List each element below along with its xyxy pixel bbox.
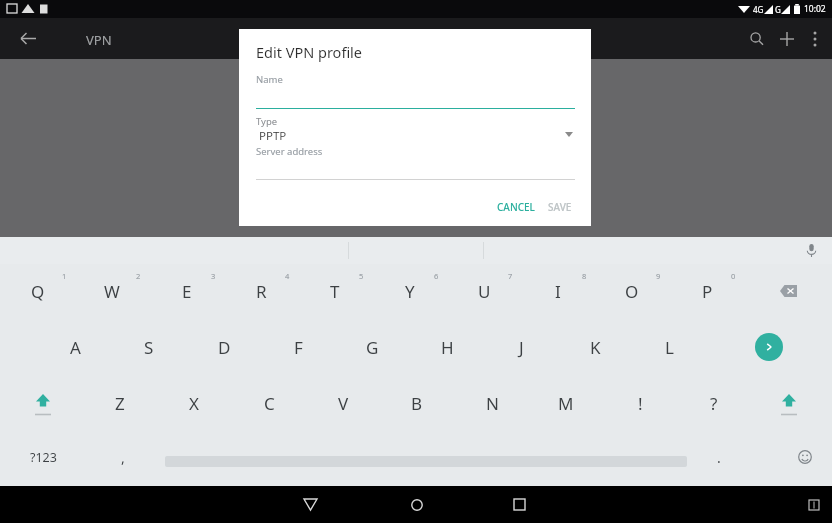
button[interactable]: W bbox=[81, 266, 143, 316]
staticText: W bbox=[104, 280, 120, 303]
button[interactable]: ! bbox=[609, 378, 671, 428]
button[interactable]: J bbox=[490, 322, 552, 372]
button[interactable]: , bbox=[98, 435, 148, 479]
button[interactable]: L bbox=[638, 322, 700, 372]
staticText: CANCEL bbox=[497, 200, 535, 214]
button[interactable]: Add VPN profile bbox=[772, 18, 802, 59]
staticText: X bbox=[189, 392, 199, 415]
staticText: G bbox=[366, 336, 379, 359]
button[interactable]: Voice input bbox=[795, 237, 828, 264]
button[interactable]: Select VPN type bbox=[559, 125, 579, 143]
button[interactable]: Backspace bbox=[762, 266, 814, 316]
staticText: 4G bbox=[753, 4, 764, 15]
staticText: V bbox=[338, 392, 349, 415]
staticText: 0 bbox=[731, 271, 736, 281]
staticText: E bbox=[182, 280, 192, 303]
staticText: 5 bbox=[359, 271, 364, 281]
staticText: PPTP bbox=[259, 128, 287, 144]
button[interactable]: U bbox=[453, 266, 515, 316]
staticText: . bbox=[717, 448, 721, 467]
staticText: 10:02 bbox=[804, 3, 826, 15]
button[interactable]: Enter bbox=[745, 322, 793, 372]
staticText: ?123 bbox=[30, 449, 57, 466]
button[interactable]: I bbox=[527, 266, 589, 316]
staticText: Y bbox=[405, 280, 415, 303]
staticText: ? bbox=[710, 392, 718, 415]
staticText: , bbox=[121, 448, 125, 467]
button[interactable]: R bbox=[230, 266, 292, 316]
staticText: I bbox=[555, 280, 561, 303]
staticText: P bbox=[702, 280, 713, 303]
button[interactable]: O bbox=[601, 266, 663, 316]
button[interactable]: Back bbox=[8, 18, 48, 59]
staticText: N bbox=[486, 392, 499, 415]
button[interactable]: P bbox=[676, 266, 738, 316]
button[interactable]: Recent apps bbox=[497, 486, 541, 523]
staticText: Server address bbox=[256, 145, 323, 158]
button[interactable]: ? bbox=[683, 378, 745, 428]
button[interactable]: H bbox=[416, 322, 478, 372]
button[interactable]: Home bbox=[395, 486, 439, 523]
button[interactable]: Screenshot bbox=[802, 486, 826, 523]
button[interactable]: G bbox=[341, 322, 403, 372]
button[interactable]: More options bbox=[802, 18, 828, 59]
staticText: O bbox=[625, 280, 639, 303]
button[interactable]: S bbox=[118, 322, 180, 372]
staticText: L bbox=[665, 336, 674, 359]
staticText: 7 bbox=[508, 271, 513, 281]
button[interactable]: SAVE bbox=[538, 193, 582, 221]
staticText: Type bbox=[256, 115, 278, 128]
button[interactable]: . bbox=[697, 435, 741, 479]
staticText: R bbox=[256, 280, 267, 303]
button[interactable]: C bbox=[238, 378, 300, 428]
staticText: 8 bbox=[582, 271, 587, 281]
staticText: F bbox=[294, 336, 303, 359]
staticText: K bbox=[590, 336, 601, 359]
button[interactable]: Shift bbox=[14, 378, 72, 428]
staticText: S bbox=[144, 336, 154, 359]
staticText: ! bbox=[638, 392, 643, 415]
staticText: C bbox=[264, 392, 275, 415]
staticText: M bbox=[558, 392, 574, 415]
staticText: Name bbox=[256, 73, 283, 86]
staticText: 6 bbox=[434, 271, 439, 281]
button[interactable]: ?123 bbox=[8, 435, 78, 479]
staticText: B bbox=[411, 392, 423, 415]
button[interactable]: CANCEL bbox=[487, 193, 545, 221]
staticText: SAVE bbox=[548, 200, 572, 214]
button[interactable]: B bbox=[386, 378, 448, 428]
staticText: Z bbox=[115, 392, 125, 415]
button[interactable]: X bbox=[163, 378, 225, 428]
staticText: VPN bbox=[86, 31, 112, 49]
staticText: H bbox=[441, 336, 454, 359]
button[interactable]: Emoji bbox=[782, 435, 828, 479]
staticText: 3 bbox=[211, 271, 216, 281]
button[interactable]: Search bbox=[742, 18, 772, 59]
button[interactable]: K bbox=[564, 322, 626, 372]
button[interactable]: E bbox=[156, 266, 218, 316]
button[interactable]: Q bbox=[7, 266, 69, 316]
button[interactable]: V bbox=[312, 378, 374, 428]
button[interactable]: Shift bbox=[760, 378, 818, 428]
button[interactable]: Back bbox=[288, 486, 332, 523]
button[interactable]: Z bbox=[89, 378, 151, 428]
staticText: 2 bbox=[136, 271, 141, 281]
staticText: T bbox=[330, 280, 340, 303]
staticText: D bbox=[218, 336, 231, 359]
staticText: 9 bbox=[656, 271, 661, 281]
button[interactable]: Y bbox=[379, 266, 441, 316]
button[interactable]: N bbox=[461, 378, 523, 428]
staticText: 4 bbox=[285, 271, 290, 281]
button[interactable]: D bbox=[193, 322, 255, 372]
staticText: U bbox=[478, 280, 491, 303]
button[interactable]: A bbox=[44, 322, 106, 372]
staticText: Q bbox=[31, 280, 45, 303]
button[interactable]: M bbox=[535, 378, 597, 428]
button[interactable]: T bbox=[304, 266, 366, 316]
staticText: A bbox=[70, 336, 81, 359]
staticText: J bbox=[519, 336, 524, 359]
staticText: 1 bbox=[62, 271, 67, 281]
button[interactable]: F bbox=[267, 322, 329, 372]
staticText: G bbox=[775, 4, 781, 15]
